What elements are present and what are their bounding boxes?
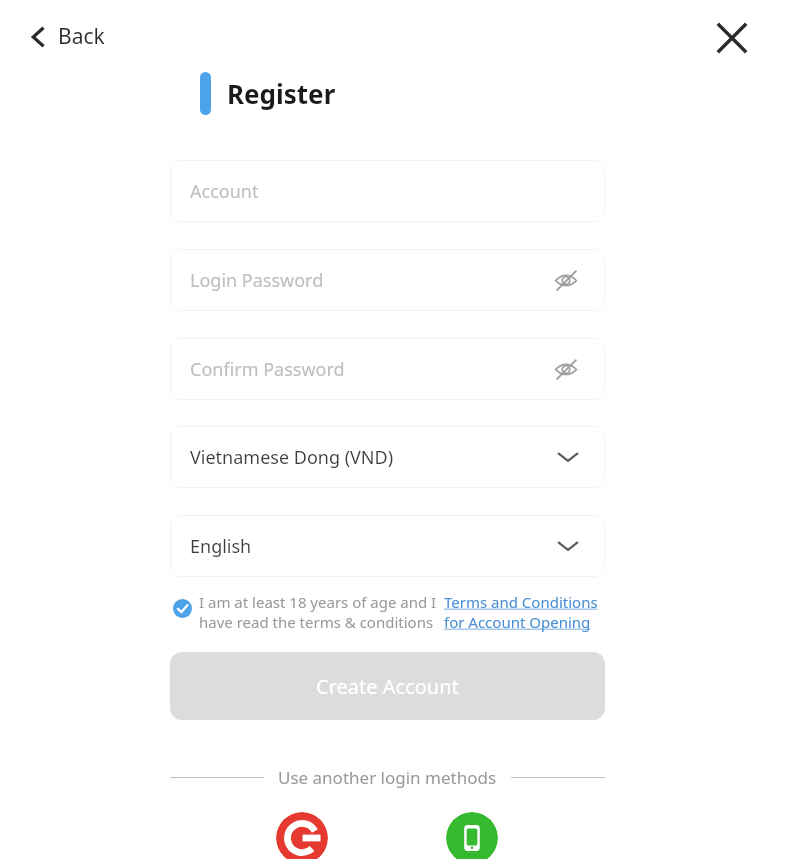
staticText: Login Password — [190, 268, 324, 293]
staticText: Confirm Password — [190, 357, 345, 382]
button[interactable]: Close — [706, 12, 758, 64]
staticText: Use another login methods — [278, 766, 497, 789]
button[interactable]: Create Account — [170, 652, 605, 720]
staticText: for Account Opening — [444, 612, 591, 632]
staticText: Register — [227, 76, 336, 111]
staticText: Terms and Conditions — [444, 592, 598, 612]
button[interactable]: Login Password — [170, 249, 605, 311]
staticText: Vietnamese Dong (VND) — [190, 445, 394, 470]
button[interactable]: Sign in with phone — [446, 812, 498, 859]
button[interactable]: Terms and Conditions — [444, 592, 598, 632]
staticText: Back — [58, 22, 105, 51]
button[interactable]: Open list — [553, 531, 583, 561]
button[interactable]: Back — [22, 16, 111, 57]
staticText: English — [190, 534, 252, 559]
staticText: I am at least 18 years of age and I — [199, 592, 437, 612]
button[interactable]: Account — [170, 160, 605, 222]
staticText: Account — [190, 179, 259, 204]
button[interactable]: Vietnamese Dong (VND) — [170, 426, 605, 488]
staticText: Create Account — [316, 673, 459, 700]
button[interactable]: Show password — [551, 354, 581, 384]
button[interactable]: Sign in with Google — [276, 812, 328, 859]
button[interactable]: Show password — [551, 265, 581, 295]
button[interactable]: Open list — [553, 442, 583, 472]
staticText: have read the terms & conditions — [199, 612, 434, 632]
button[interactable]: Confirm Password — [170, 338, 605, 400]
button[interactable]: Agree to terms — [168, 594, 196, 622]
button[interactable]: English — [170, 515, 605, 577]
